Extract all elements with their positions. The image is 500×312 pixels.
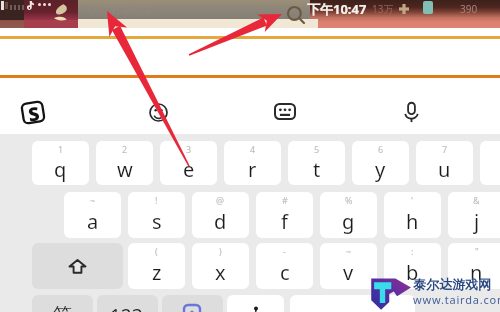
staticText: d: [214, 208, 227, 235]
button[interactable]: 3: [160, 141, 217, 185]
staticText: r: [248, 156, 257, 183]
button[interactable]: ~: [64, 192, 121, 238]
staticText: -: [283, 245, 286, 257]
staticText: 3: [186, 143, 192, 155]
staticText: www.tairda.com: [413, 292, 500, 307]
staticText: :: [411, 245, 414, 257]
staticText: u: [438, 156, 451, 183]
button[interactable]: Space: [290, 295, 415, 312]
button[interactable]: ~: [320, 243, 377, 289]
button[interactable]: %: [320, 192, 377, 238]
staticText: s: [152, 208, 162, 235]
button[interactable]: ): [192, 243, 249, 289]
button[interactable]: (: [128, 243, 185, 289]
button[interactable]: Keyboard layout: [274, 103, 296, 120]
staticText: 13万: [372, 2, 394, 16]
staticText: 小红书等你来: [87, 3, 153, 17]
staticText: e: [183, 156, 195, 183]
button[interactable]: !: [128, 192, 185, 238]
button[interactable]: ': [384, 192, 441, 238]
staticText: 1: [58, 143, 64, 155]
button[interactable]: Symbols: [32, 295, 93, 312]
button[interactable]: Search: [286, 5, 306, 25]
button[interactable]: :: [384, 243, 441, 289]
staticText: f: [281, 208, 288, 235]
staticText: 2: [122, 143, 128, 155]
staticText: g: [342, 208, 355, 235]
staticText: v: [343, 259, 354, 286]
button[interactable]: #: [256, 192, 313, 238]
button[interactable]: Emoji: [162, 295, 223, 312]
button[interactable]: 7: [416, 141, 473, 185]
staticText: 下午10:47: [307, 0, 367, 18]
staticText: 符: [53, 303, 72, 312]
button[interactable]: Emoji: [149, 103, 168, 122]
staticText: b: [406, 259, 419, 286]
staticText: h: [406, 208, 419, 235]
button[interactable]: @: [192, 192, 249, 238]
staticText: 7: [442, 143, 448, 155]
staticText: y: [375, 156, 386, 183]
button[interactable]: 1: [32, 141, 89, 185]
staticText: ~: [90, 194, 96, 206]
staticText: @: [216, 194, 225, 206]
staticText: ~: [346, 245, 352, 257]
staticText: c: [280, 259, 290, 286]
staticText: 4: [250, 143, 256, 155]
staticText: S: [26, 100, 41, 125]
staticText: ): [219, 245, 222, 257]
staticText: z: [152, 259, 162, 286]
staticText: 泰尔达游戏网: [413, 276, 491, 292]
staticText: #: [282, 194, 288, 206]
button[interactable]: Search field: [78, 0, 310, 19]
staticText: q: [54, 156, 67, 183]
button[interactable]: 2: [96, 141, 153, 185]
staticText: 5: [314, 143, 320, 155]
staticText: ": [475, 245, 479, 257]
button[interactable]: Shift: [32, 243, 123, 289]
staticText: 390: [460, 2, 478, 16]
staticText: x: [215, 259, 226, 286]
button[interactable]: 4: [224, 141, 281, 185]
button[interactable]: Sogou input method: [21, 101, 45, 124]
staticText: 123: [110, 303, 143, 312]
staticText: (: [155, 245, 158, 257]
staticText: &: [473, 194, 480, 206]
staticText: w: [117, 156, 133, 183]
staticText: t: [313, 156, 321, 183]
staticText: 6: [378, 143, 384, 155]
button[interactable]: Comma: [227, 295, 284, 312]
button[interactable]: &: [448, 192, 500, 238]
button[interactable]: Voice input: [403, 101, 420, 123]
button[interactable]: ": [448, 243, 500, 289]
staticText: !: [155, 194, 158, 206]
button[interactable]: 5: [288, 141, 345, 185]
staticText: n: [470, 259, 483, 286]
staticText: a: [87, 208, 99, 235]
staticText: j: [474, 208, 480, 235]
button[interactable]: Numbers: [97, 295, 158, 312]
staticText: %: [345, 194, 353, 206]
button[interactable]: 6: [352, 141, 409, 185]
button[interactable]: -: [256, 243, 313, 289]
staticText: ': [411, 194, 414, 206]
